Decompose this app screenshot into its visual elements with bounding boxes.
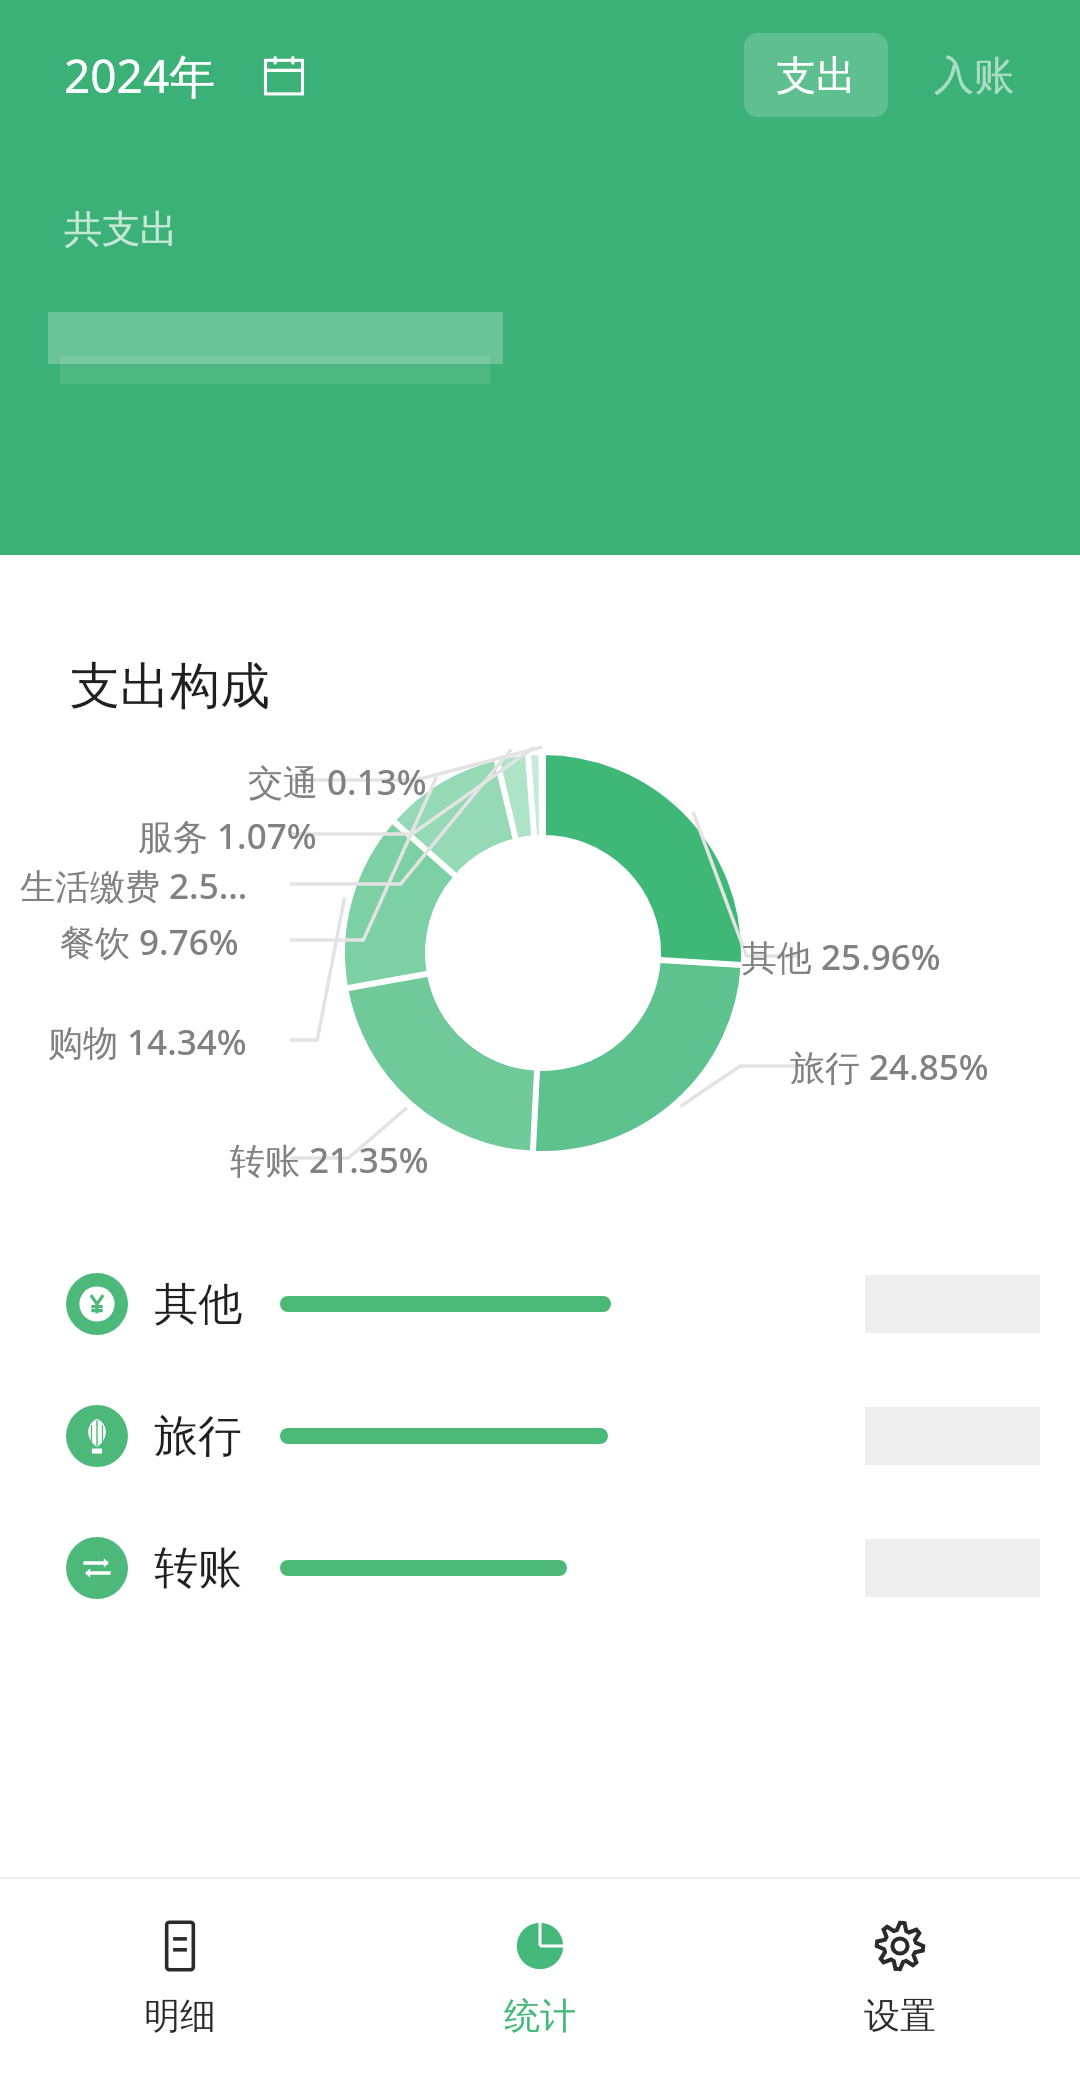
staticText: 购物 14.34% xyxy=(48,1018,247,1066)
staticText: 支出构成 xyxy=(70,655,270,718)
staticText: 其他 25.96% xyxy=(742,933,941,981)
button[interactable]: 入账 xyxy=(914,33,1034,117)
staticText: 旅行 24.85% xyxy=(790,1043,989,1091)
staticText: 支出 xyxy=(776,50,856,100)
staticText: 共支出 xyxy=(64,205,178,253)
button[interactable]: Details xyxy=(0,1879,360,2075)
button[interactable]: 其他 xyxy=(0,1238,1080,1370)
button[interactable]: 支出 xyxy=(744,33,888,117)
staticText: 餐饮 9.76% xyxy=(60,918,239,966)
button[interactable]: 转账 xyxy=(0,1502,1080,1634)
staticText: 其他 xyxy=(154,1277,242,1332)
staticText: 入账 xyxy=(934,50,1014,100)
staticText: 转账 xyxy=(154,1541,242,1596)
staticText: 交通 0.13% xyxy=(248,758,427,806)
staticText: 明细 xyxy=(144,1993,216,2038)
staticText: 2024年 xyxy=(64,44,216,107)
button[interactable]: 旅行 xyxy=(0,1370,1080,1502)
staticText: 统计 xyxy=(504,1993,576,2038)
staticText: 生活缴费 2.5... xyxy=(20,862,248,910)
staticText: 设置 xyxy=(864,1993,936,2038)
staticText: 服务 1.07% xyxy=(138,812,317,860)
button[interactable]: Settings xyxy=(720,1879,1080,2075)
other: Pick date xyxy=(256,48,312,104)
button[interactable]: 2024年 xyxy=(64,44,320,107)
button[interactable]: Statistics xyxy=(360,1879,720,2075)
staticText: 旅行 xyxy=(154,1409,242,1464)
staticText: 转账 21.35% xyxy=(230,1136,429,1184)
